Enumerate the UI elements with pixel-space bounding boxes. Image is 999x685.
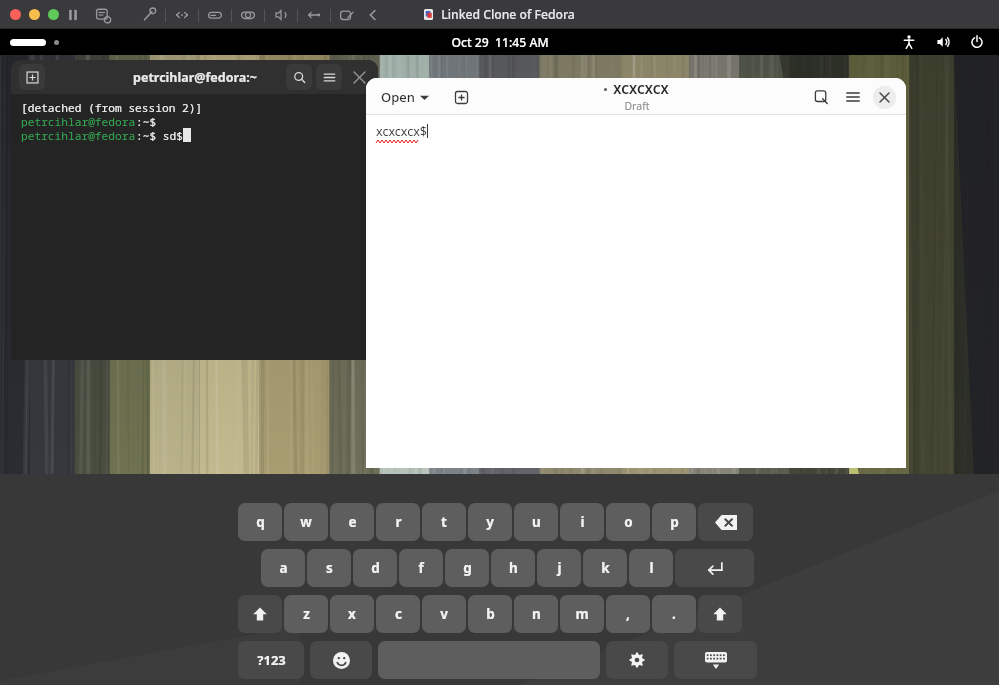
staticText: s xyxy=(326,559,333,577)
button[interactable]: f xyxy=(399,549,443,587)
button[interactable]: Activities xyxy=(10,39,59,46)
button[interactable]: k xyxy=(583,549,627,587)
staticText: [detached (from session 2)] xyxy=(21,100,203,114)
button[interactable]: New tab xyxy=(19,64,45,90)
button[interactable]: ?123 xyxy=(238,641,304,679)
staticText: :~$ sd$ xyxy=(136,128,183,142)
staticText: r xyxy=(395,513,402,531)
button[interactable]: q xyxy=(238,503,282,541)
button[interactable]: Disk xyxy=(204,4,226,26)
button[interactable] xyxy=(29,9,40,20)
button[interactable]: Accessibility xyxy=(899,32,919,52)
button[interactable] xyxy=(10,9,21,20)
staticText: Open xyxy=(381,88,415,106)
button[interactable]: Menu xyxy=(316,64,342,90)
staticText: n xyxy=(532,605,541,623)
button[interactable]: Find xyxy=(809,85,833,109)
button[interactable]: . xyxy=(652,595,696,633)
staticText: c xyxy=(395,605,402,623)
button[interactable]: Hide keyboard xyxy=(674,641,757,679)
button[interactable]: Search xyxy=(286,64,312,90)
button[interactable]: Back xyxy=(362,4,384,26)
button[interactable]: Backspace xyxy=(698,503,753,541)
staticText: Linked Clone of Fedora xyxy=(441,6,575,23)
button[interactable]: Camera xyxy=(237,4,259,26)
button[interactable]: p xyxy=(652,503,696,541)
button[interactable]: m xyxy=(560,595,604,633)
staticText: ?123 xyxy=(257,651,286,669)
button[interactable]: o xyxy=(606,503,650,541)
staticText: d xyxy=(371,559,380,577)
button[interactable]: i xyxy=(560,503,604,541)
button[interactable]: t xyxy=(422,503,466,541)
button[interactable]: e xyxy=(330,503,374,541)
staticText: xcxcxcx$ xyxy=(376,123,427,140)
button[interactable]: u xyxy=(514,503,558,541)
button[interactable]: Main menu xyxy=(841,85,865,109)
staticText: . xyxy=(672,605,676,623)
staticText: u xyxy=(532,513,541,531)
button[interactable]: r xyxy=(376,503,420,541)
button[interactable]: y xyxy=(468,503,512,541)
button[interactable]: Settings xyxy=(138,4,160,26)
button[interactable]: Sound xyxy=(270,4,292,26)
button[interactable]: Shift xyxy=(238,595,282,633)
staticText: t xyxy=(441,513,447,531)
button[interactable]: g xyxy=(445,549,489,587)
staticText: petrcihlar@fedora xyxy=(21,128,136,142)
button[interactable]: n xyxy=(514,595,558,633)
staticText: f xyxy=(418,559,424,577)
staticText: , xyxy=(626,605,630,623)
button[interactable]: v xyxy=(422,595,466,633)
button[interactable]: w xyxy=(284,503,328,541)
staticText: b xyxy=(486,605,495,623)
staticText: Draft xyxy=(624,99,650,113)
button[interactable]: b xyxy=(468,595,512,633)
staticText: h xyxy=(509,559,518,577)
button[interactable]: z xyxy=(284,595,328,633)
button[interactable]: Snapshot xyxy=(92,4,114,26)
button[interactable]: d xyxy=(353,549,397,587)
button[interactable]: Close xyxy=(873,86,896,109)
staticText: w xyxy=(300,513,312,531)
staticText: v xyxy=(440,605,448,623)
button[interactable]: Oct 29 11:45 AM xyxy=(451,34,549,51)
button[interactable]: x xyxy=(330,595,374,633)
staticText: :~$ xyxy=(136,114,157,128)
staticText: i xyxy=(580,513,585,531)
button[interactable]: Close xyxy=(346,64,372,90)
button[interactable]: Network xyxy=(171,4,193,26)
staticText: z xyxy=(303,605,310,623)
button[interactable]: s xyxy=(307,549,351,587)
staticText: m xyxy=(575,605,589,623)
staticText: petrcihlar@fedora:~ xyxy=(133,69,257,86)
staticText: g xyxy=(463,559,472,577)
button[interactable]: Emoji xyxy=(310,641,372,679)
button[interactable]: New document xyxy=(450,86,472,108)
staticText: XCXCXCX xyxy=(613,81,669,98)
button[interactable]: l xyxy=(629,549,673,587)
staticText: Oct 29 11:45 AM xyxy=(451,34,549,51)
button[interactable]: Keyboard settings xyxy=(606,641,668,679)
button[interactable]: Open xyxy=(378,85,432,109)
staticText: j xyxy=(557,559,562,577)
button[interactable]: USB xyxy=(303,4,325,26)
button[interactable]: j xyxy=(537,549,581,587)
button[interactable]: Power xyxy=(967,32,987,52)
staticText: x xyxy=(348,605,356,623)
staticText: l xyxy=(649,559,654,577)
button[interactable]: Enter xyxy=(675,549,754,587)
button[interactable]: Shift xyxy=(698,595,742,633)
staticText: k xyxy=(601,559,610,577)
button[interactable]: a xyxy=(261,549,305,587)
button[interactable]: h xyxy=(491,549,535,587)
staticText: y xyxy=(486,513,494,531)
button[interactable]: , xyxy=(606,595,650,633)
staticText: petrcihlar@fedora xyxy=(21,114,136,128)
button[interactable] xyxy=(48,9,59,20)
button[interactable]: Share xyxy=(336,4,358,26)
button[interactable]: Pause xyxy=(62,4,84,26)
button[interactable]: Volume xyxy=(933,32,953,52)
button[interactable]: c xyxy=(376,595,420,633)
